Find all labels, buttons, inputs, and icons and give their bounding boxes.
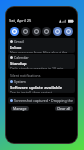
button[interactable]: Manage <box>11 106 29 111</box>
staticText: Tap to install, then restart <box>10 90 53 93</box>
button[interactable]: Gmail <box>8 38 75 53</box>
staticText: Clear all <box>57 106 71 111</box>
staticText: Gmail <box>14 39 24 44</box>
staticText: Silent notifications <box>10 73 41 78</box>
button[interactable]: Quick setting 1 <box>10 27 19 36</box>
button[interactable]: Quick setting 3 <box>32 27 41 36</box>
button[interactable]: Quick setting 6 <box>64 27 73 36</box>
button[interactable]: Quick setting 4 <box>42 27 51 36</box>
staticText: New message from Alice about the pro <box>10 50 73 53</box>
button[interactable]: Calendar <box>8 54 75 69</box>
button[interactable]: System <box>8 78 75 93</box>
button[interactable]: Clear all <box>55 106 73 111</box>
staticText: Standup <box>10 61 27 66</box>
button[interactable]: Quick setting 2 <box>21 27 30 36</box>
staticText: Screenshot captured • Dropping the below… <box>14 98 73 103</box>
staticText: Sat, April 25 <box>9 18 32 23</box>
staticText: System <box>14 79 26 84</box>
staticText: Daily standup meeting in 10 min <box>10 66 64 69</box>
staticText: Manage <box>13 106 27 111</box>
button[interactable]: Screenshot captured • Dropping the below… <box>8 97 75 104</box>
staticText: Software update available <box>10 85 63 90</box>
staticText: Inbox <box>10 45 22 50</box>
staticText: Calendar <box>14 55 29 60</box>
button[interactable]: Quick setting 5 <box>53 27 62 36</box>
